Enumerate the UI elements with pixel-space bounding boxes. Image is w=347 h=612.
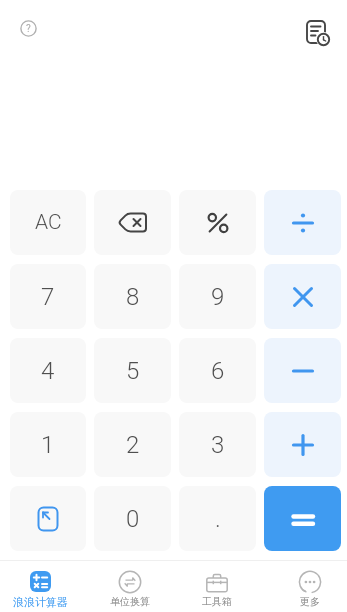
button[interactable]: 2 xyxy=(94,412,171,477)
button[interactable]: 8 xyxy=(94,264,171,329)
staticText: 2 xyxy=(126,431,140,459)
button[interactable]: 更多 xyxy=(260,561,347,612)
staticText: 1 xyxy=(41,431,55,459)
staticText: 3 xyxy=(211,431,225,459)
button[interactable]: 单位换算 xyxy=(86,561,173,612)
button[interactable] xyxy=(94,190,171,255)
button[interactable]: 4 xyxy=(10,338,86,403)
staticText: ? xyxy=(26,23,31,35)
button[interactable]: . xyxy=(179,486,256,551)
staticText: 6 xyxy=(211,357,225,385)
staticText: 9 xyxy=(211,283,225,311)
button[interactable] xyxy=(179,190,256,255)
staticText: 工具箱 xyxy=(202,595,232,608)
staticText: 更多 xyxy=(300,595,320,608)
button[interactable]: 浪浪计算器 xyxy=(0,561,86,612)
staticText: AC xyxy=(35,210,62,235)
button[interactable] xyxy=(10,486,86,551)
button[interactable]: 3 xyxy=(179,412,256,477)
staticText: 4 xyxy=(41,357,55,385)
button[interactable] xyxy=(264,486,341,551)
staticText: . xyxy=(215,505,221,533)
button[interactable]: 6 xyxy=(179,338,256,403)
staticText: 8 xyxy=(126,283,140,311)
button[interactable] xyxy=(264,412,341,477)
button[interactable] xyxy=(264,264,341,329)
button[interactable]: 0 xyxy=(94,486,171,551)
staticText: 0 xyxy=(126,505,140,533)
button[interactable] xyxy=(264,338,341,403)
button[interactable] xyxy=(264,190,341,255)
button[interactable]: AC xyxy=(10,190,86,255)
staticText: 浪浪计算器 xyxy=(13,595,68,609)
staticText: 7 xyxy=(41,283,55,311)
button[interactable]: 5 xyxy=(94,338,171,403)
staticText: 单位换算 xyxy=(110,595,150,608)
button[interactable] xyxy=(305,19,332,46)
staticText: 5 xyxy=(126,357,140,385)
button[interactable]: ? xyxy=(20,20,37,37)
button[interactable]: 1 xyxy=(10,412,86,477)
button[interactable]: 9 xyxy=(179,264,256,329)
button[interactable]: 工具箱 xyxy=(173,561,260,612)
button[interactable]: 7 xyxy=(10,264,86,329)
